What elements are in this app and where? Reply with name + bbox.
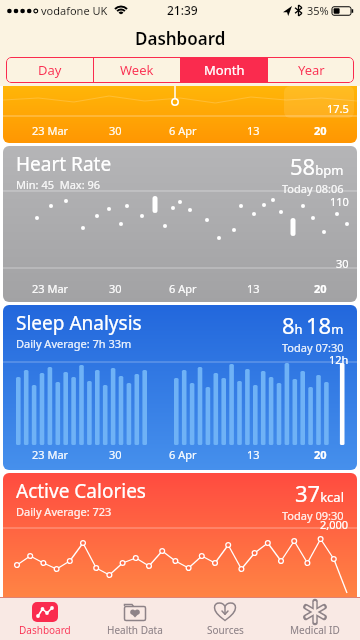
staticText: 30 bbox=[109, 447, 122, 462]
staticText: Sources bbox=[207, 623, 244, 637]
staticText: 13 bbox=[247, 281, 260, 296]
staticText: 6 Apr bbox=[169, 281, 197, 296]
staticText: Dashboard bbox=[19, 623, 71, 637]
button[interactable]: Active Calories bbox=[3, 473, 357, 597]
staticText: Today 08:06 bbox=[282, 181, 344, 196]
button[interactable]: Day bbox=[6, 57, 93, 83]
staticText: Month bbox=[204, 61, 245, 79]
staticText: Dashboard bbox=[135, 27, 226, 50]
staticText: 2,000 bbox=[320, 517, 349, 532]
staticText: Today 09:30 bbox=[282, 508, 344, 523]
button[interactable]: Medical ID bbox=[270, 598, 360, 640]
staticText: Health Data bbox=[107, 623, 163, 637]
button[interactable]: Sources bbox=[180, 598, 270, 640]
staticText: Year bbox=[298, 61, 325, 79]
staticText: 30 bbox=[109, 123, 122, 138]
staticText: 20 bbox=[314, 447, 327, 462]
staticText: 20 bbox=[314, 123, 327, 138]
button[interactable]: Week bbox=[94, 57, 180, 83]
button[interactable]: Year bbox=[268, 57, 354, 83]
button[interactable]: Dashboard bbox=[0, 598, 90, 640]
staticText: 30 bbox=[109, 281, 122, 296]
staticText: 20 bbox=[314, 281, 327, 296]
staticText: 12h bbox=[329, 352, 349, 367]
staticText: 35% bbox=[307, 3, 329, 18]
button[interactable]: Health Data bbox=[90, 598, 180, 640]
button[interactable]: Sleep Analysis bbox=[3, 305, 357, 470]
staticText: vodafone UK bbox=[41, 3, 108, 18]
staticText: 6 Apr bbox=[169, 123, 197, 138]
staticText: Min: 45 Max: 96 bbox=[16, 177, 101, 192]
staticText: 13 bbox=[247, 123, 260, 138]
staticText: Heart Rate bbox=[16, 151, 112, 177]
staticText: Day bbox=[38, 61, 62, 79]
staticText: Medical ID bbox=[290, 623, 340, 637]
button[interactable]: Month bbox=[181, 57, 267, 83]
staticText: 23 Mar bbox=[32, 281, 69, 296]
staticText: 23 Mar bbox=[32, 123, 69, 138]
staticText: 21:39 bbox=[167, 2, 198, 18]
staticText: 6 Apr bbox=[169, 447, 197, 462]
staticText: Today 07:30 bbox=[282, 340, 344, 355]
staticText: 13 bbox=[247, 447, 260, 462]
button[interactable]: 17.5 bbox=[3, 86, 357, 143]
staticText: 23 Mar bbox=[32, 447, 69, 462]
staticText: 17.5 bbox=[327, 101, 349, 116]
staticText: 58bpm bbox=[290, 151, 344, 181]
staticText: 8h 18m bbox=[282, 310, 344, 340]
staticText: 110 bbox=[330, 194, 349, 209]
button[interactable]: Heart Rate bbox=[3, 146, 357, 302]
staticText: Sleep Analysis bbox=[16, 310, 142, 336]
staticText: 30 bbox=[336, 256, 349, 271]
staticText: Daily Average: 723 bbox=[16, 504, 112, 519]
staticText: Active Calories bbox=[16, 478, 146, 504]
staticText: 37kcal bbox=[295, 478, 344, 508]
staticText: Daily Average: 7h 33m bbox=[16, 336, 132, 351]
staticText: Week bbox=[120, 61, 154, 79]
